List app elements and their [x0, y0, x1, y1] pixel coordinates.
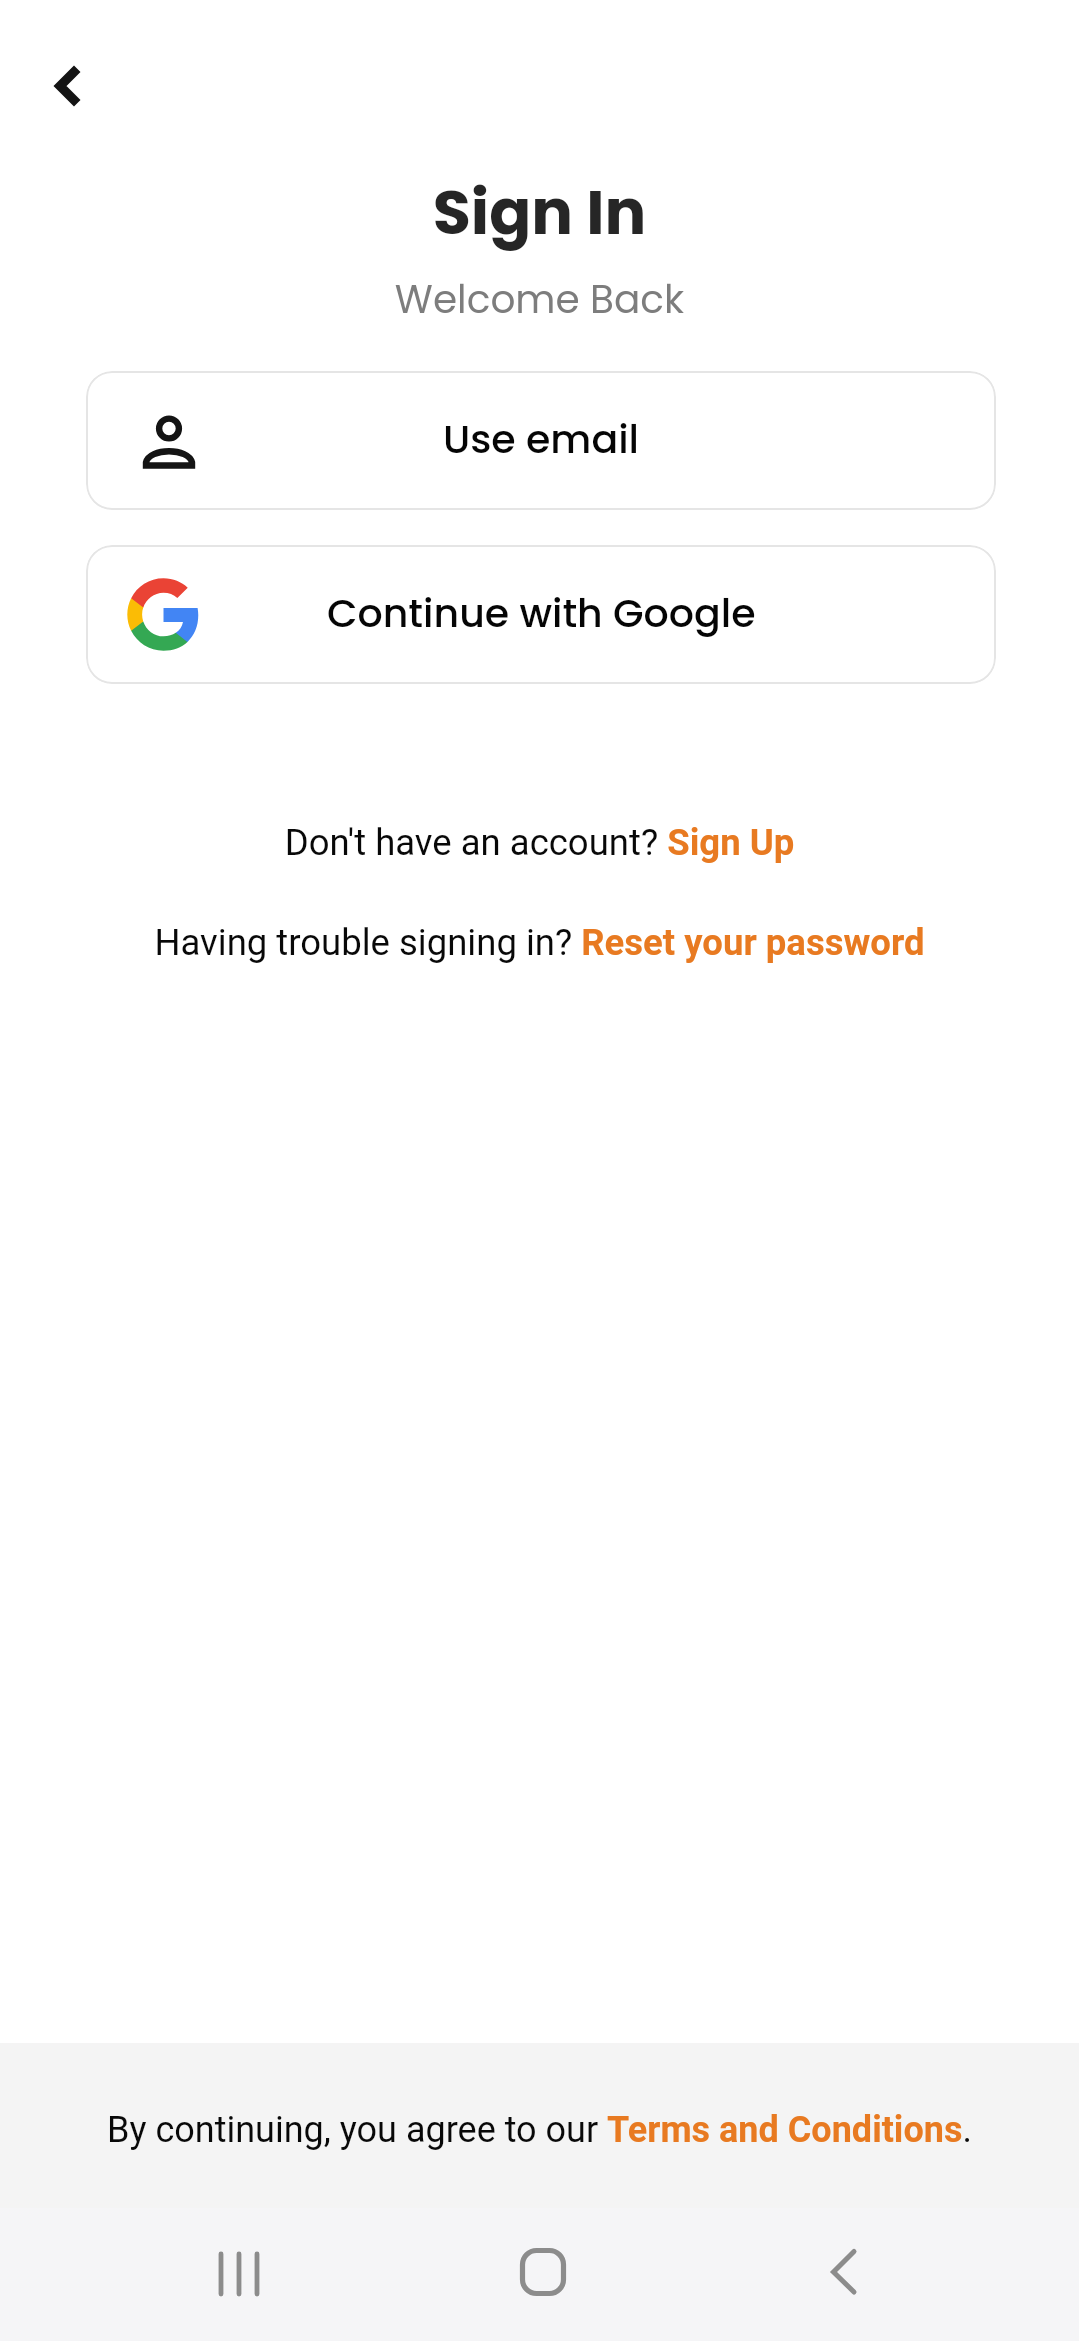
button[interactable]: Back — [30, 46, 102, 118]
staticText: Sign In — [0, 169, 1079, 256]
button[interactable]: Continue with Google — [86, 545, 996, 684]
button[interactable]: Don't have an account? Sign Up — [0, 821, 1079, 864]
button[interactable]: Use email — [86, 371, 996, 510]
button[interactable]: Home — [481, 2210, 601, 2330]
button[interactable]: Having trouble signing in? Reset your pa… — [0, 921, 1079, 964]
button[interactable]: By continuing, you agree to our Terms an… — [0, 2109, 1079, 2151]
staticText: Welcome Back — [0, 272, 1079, 327]
button[interactable]: Back — [784, 2211, 904, 2331]
staticText: Continue with Google — [327, 586, 756, 641]
staticText: Use email — [443, 412, 640, 467]
button[interactable]: Recent apps — [179, 2214, 299, 2334]
